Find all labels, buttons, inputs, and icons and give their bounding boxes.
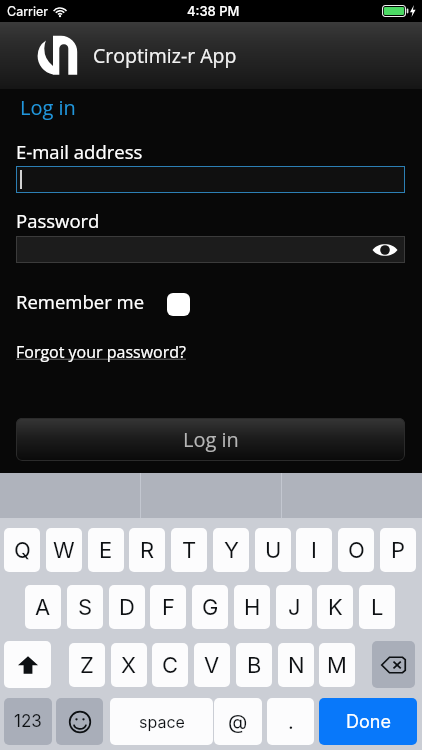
staticText: Croptimiz-r App	[93, 42, 237, 69]
button[interactable]: Forgot your password?	[12, 341, 190, 363]
staticText: J	[288, 594, 301, 621]
button[interactable]: G	[192, 585, 228, 629]
button[interactable]: Z	[69, 643, 105, 687]
button[interactable]: I	[296, 528, 332, 572]
button[interactable]: W	[46, 528, 82, 572]
button[interactable]: J	[276, 585, 312, 629]
staticText: Log in	[183, 426, 239, 453]
button[interactable]: Done	[319, 698, 417, 745]
button[interactable]: 123	[4, 698, 52, 745]
button[interactable]: S	[67, 585, 103, 629]
staticText: K	[328, 594, 343, 621]
staticText: Remember me	[16, 289, 145, 314]
button[interactable]: T	[171, 528, 207, 572]
staticText: @	[228, 710, 248, 734]
staticText: P	[391, 537, 406, 564]
staticText: 123	[14, 711, 42, 732]
staticText: .	[288, 710, 294, 734]
button[interactable]: X	[111, 643, 147, 687]
staticText: 4:38 PM	[187, 3, 240, 19]
button[interactable]: Show password	[16, 236, 405, 263]
staticText: E	[99, 537, 113, 564]
staticText: O	[348, 537, 365, 564]
staticText: F	[162, 594, 175, 621]
button[interactable]: R	[129, 528, 165, 572]
staticText: R	[140, 537, 155, 564]
staticText: L	[371, 594, 384, 621]
button[interactable]: Q	[4, 528, 40, 572]
staticText: Forgot your password?	[16, 341, 186, 363]
staticText: S	[78, 594, 93, 621]
button[interactable]: F	[150, 585, 186, 629]
button[interactable]: Backspace	[372, 641, 415, 688]
staticText: T	[182, 537, 197, 564]
staticText: Password	[16, 208, 100, 233]
staticText: H	[244, 594, 261, 621]
button[interactable]: U	[255, 528, 291, 572]
button[interactable]: .	[267, 698, 314, 745]
staticText: C	[162, 652, 179, 679]
button[interactable]: Remember me checkbox	[167, 293, 190, 316]
staticText: B	[247, 652, 262, 679]
staticText: X	[121, 652, 137, 679]
staticText: V	[204, 652, 220, 679]
button[interactable]: Log in	[16, 418, 405, 461]
staticText: Z	[80, 652, 94, 679]
button[interactable]: B	[236, 643, 272, 687]
button[interactable]: L	[359, 585, 395, 629]
staticText: Q	[14, 537, 31, 564]
button[interactable]: D	[109, 585, 145, 629]
button[interactable]: Y	[213, 528, 249, 572]
button[interactable]: E	[88, 528, 124, 572]
staticText: Carrier	[7, 4, 48, 19]
staticText: D	[119, 594, 135, 621]
button[interactable]: P	[380, 528, 416, 572]
button[interactable]: C	[152, 643, 188, 687]
staticText: I	[311, 537, 317, 564]
button[interactable]: H	[234, 585, 270, 629]
staticText: U	[265, 537, 282, 564]
button[interactable]	[16, 166, 405, 193]
button[interactable]: Show password	[372, 242, 398, 258]
staticText: M	[327, 652, 347, 679]
staticText: W	[53, 537, 75, 564]
staticText: space	[139, 712, 185, 731]
button[interactable]: K	[317, 585, 353, 629]
button[interactable]: space	[110, 698, 213, 745]
button[interactable]: Emoji keyboard	[56, 698, 103, 745]
button[interactable]: M	[319, 643, 355, 687]
button[interactable]: A	[25, 585, 61, 629]
staticText: N	[288, 652, 305, 679]
staticText: A	[35, 594, 51, 621]
button[interactable]: Shift	[4, 641, 51, 688]
staticText: G	[202, 594, 219, 621]
button[interactable]: O	[338, 528, 374, 572]
button[interactable]: N	[278, 643, 314, 687]
button[interactable]: @	[214, 698, 262, 745]
button[interactable]: Log in	[16, 91, 80, 124]
staticText: E-mail address	[16, 139, 143, 164]
staticText: Done	[346, 711, 391, 733]
staticText: Log in	[20, 94, 76, 121]
staticText: Y	[224, 537, 239, 564]
button[interactable]: V	[194, 643, 230, 687]
